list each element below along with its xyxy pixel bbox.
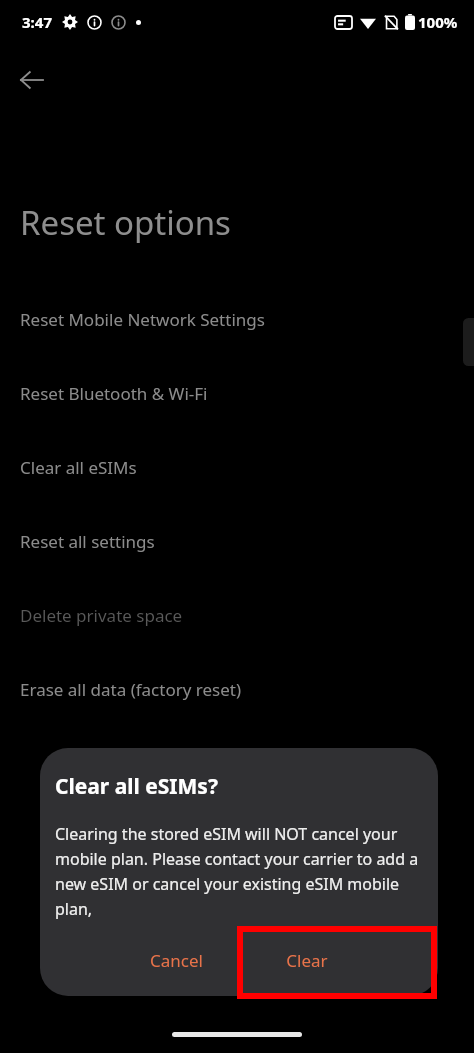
staticText: Reset Mobile Network Settings bbox=[20, 308, 265, 331]
staticText: 100% bbox=[418, 12, 458, 32]
button[interactable]: Reset all settings bbox=[0, 504, 474, 578]
button[interactable]: Reset Mobile Network Settings bbox=[0, 282, 474, 356]
button[interactable]: Delete private space bbox=[0, 578, 474, 652]
button[interactable]: Clear all eSIMs bbox=[0, 430, 474, 504]
staticText: Clear bbox=[286, 949, 328, 972]
button[interactable]: Cancel bbox=[107, 924, 245, 996]
staticText: Reset all settings bbox=[20, 530, 155, 553]
button[interactable]: Back bbox=[8, 56, 56, 104]
button[interactable]: Reset Bluetooth & Wi-Fi bbox=[0, 356, 474, 430]
button[interactable]: Clear bbox=[245, 924, 368, 996]
staticText: Clear all eSIMs? bbox=[55, 772, 218, 801]
staticText: Erase all data (factory reset) bbox=[20, 678, 242, 701]
staticText: Reset options bbox=[20, 200, 231, 245]
staticText: 3:47 bbox=[22, 12, 52, 32]
button[interactable]: Erase all data (factory reset) bbox=[0, 652, 474, 726]
staticText: Cancel bbox=[150, 949, 203, 972]
staticText: Clear all eSIMs bbox=[20, 456, 137, 479]
staticText: Reset Bluetooth & Wi-Fi bbox=[20, 382, 208, 405]
staticText: Delete private space bbox=[20, 604, 183, 627]
staticText: Clearing the stored eSIM will NOT cancel… bbox=[55, 823, 426, 919]
